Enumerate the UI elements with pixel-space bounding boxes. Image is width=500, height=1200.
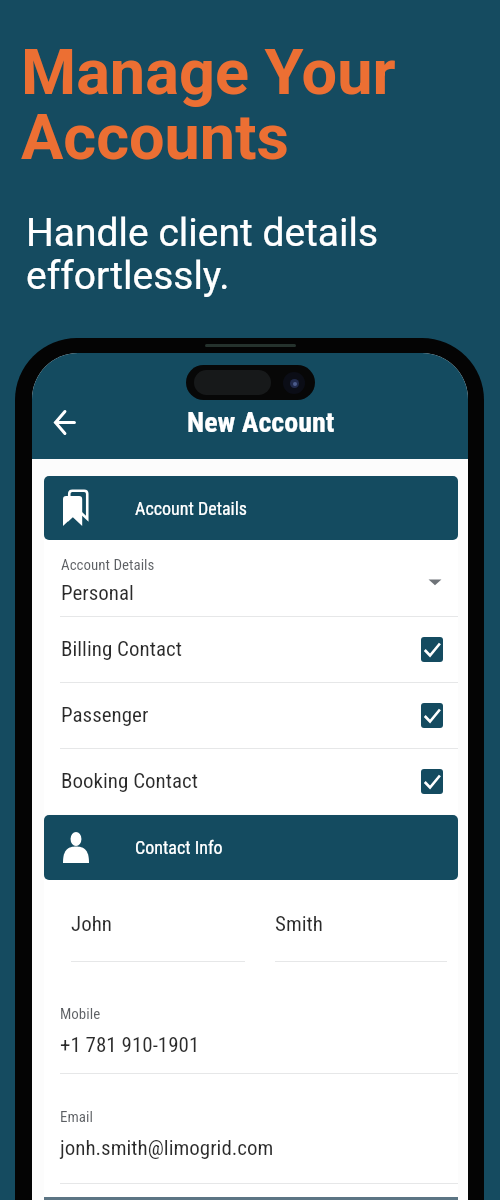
button[interactable]: Contact Info — [44, 815, 458, 880]
button[interactable]: Booking Contact — [44, 749, 458, 814]
staticText: Contact Info — [135, 837, 223, 858]
staticText: Billing Contact — [61, 637, 182, 662]
staticText: Smith — [275, 912, 323, 937]
staticText: +1 781 910-1901 — [60, 1033, 200, 1058]
staticText: New Account — [187, 406, 335, 439]
staticText: Account Details — [135, 498, 248, 519]
staticText: Mobile — [60, 1005, 101, 1023]
staticText: Manage Your Accounts — [21, 36, 396, 174]
staticText: Booking Contact — [61, 769, 198, 794]
staticText: jonh.smith@limogrid.com — [60, 1136, 274, 1161]
button[interactable]: Back — [42, 400, 86, 444]
staticText: Account Details — [61, 556, 155, 574]
button[interactable]: Account Details — [44, 476, 458, 540]
button[interactable]: Billing Contact — [44, 617, 458, 682]
staticText: John — [71, 912, 113, 937]
staticText: Email — [60, 1108, 93, 1126]
staticText: Passenger — [61, 703, 149, 728]
button[interactable]: Passenger — [44, 683, 458, 748]
staticText: Personal — [61, 581, 134, 606]
button[interactable]: Account Details — [44, 540, 458, 616]
staticText: Handle client details effortlessly. — [26, 210, 379, 299]
